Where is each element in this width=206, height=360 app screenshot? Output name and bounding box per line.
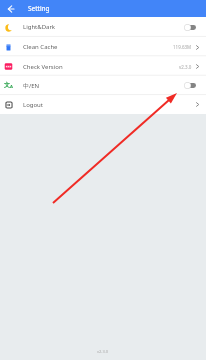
staticText: Light&Dark: [23, 23, 56, 31]
button[interactable]: Check Version: [0, 57, 206, 76]
button[interactable]: Light&Dark: [0, 17, 206, 37]
staticText: Check Version: [23, 63, 63, 71]
button[interactable]: 文: [0, 76, 206, 95]
button[interactable]: Logout: [0, 95, 206, 114]
button[interactable]: Back: [4, 3, 16, 15]
staticText: v2.3.0: [97, 349, 109, 354]
staticText: 119.63M: [173, 44, 192, 50]
staticText: Clean Cache: [23, 43, 58, 51]
staticText: 中/EN: [23, 82, 40, 90]
button[interactable]: Toggle: [184, 24, 196, 31]
staticText: A: [10, 84, 13, 90]
staticText: v2.3.0: [179, 64, 192, 70]
button[interactable]: Clean Cache: [0, 37, 206, 57]
staticText: Setting: [28, 4, 50, 13]
button[interactable]: Toggle: [184, 82, 196, 89]
staticText: Logout: [23, 101, 43, 109]
staticText: 文: [4, 81, 11, 89]
